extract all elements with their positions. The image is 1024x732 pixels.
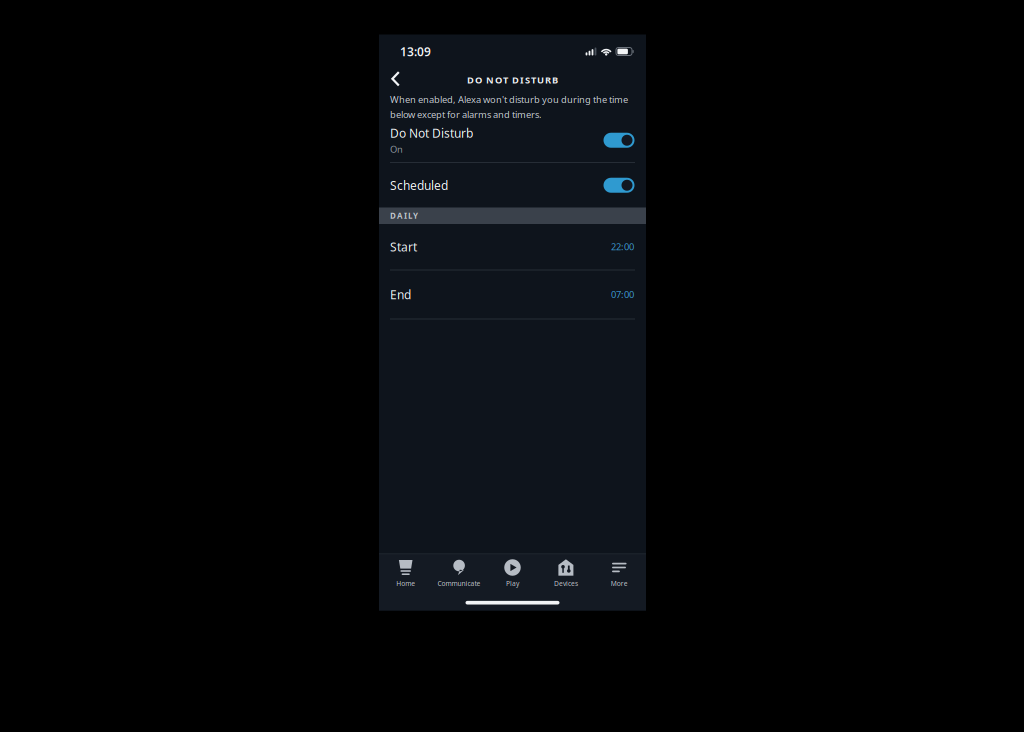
button[interactable]: Back xyxy=(379,71,401,87)
button[interactable]: Home xyxy=(379,559,432,588)
staticText: When enabled, Alexa won't disturb you du… xyxy=(390,93,628,106)
button[interactable]: Communicate xyxy=(432,559,486,588)
staticText: Start xyxy=(390,239,417,255)
button[interactable]: Do Not Disturb xyxy=(379,118,646,162)
button[interactable]: Devices xyxy=(539,559,593,588)
button[interactable]: Play xyxy=(486,559,539,588)
staticText: Play xyxy=(506,579,519,588)
staticText: Devices xyxy=(554,579,578,588)
staticText: 22:00 xyxy=(611,241,634,253)
staticText: More xyxy=(611,579,628,588)
staticText: 13:09 xyxy=(400,43,431,59)
staticText: End xyxy=(390,286,411,302)
staticText: 07:00 xyxy=(611,288,634,301)
staticText: Home xyxy=(396,579,415,588)
staticText: Scheduled xyxy=(390,177,448,193)
staticText: D A I L Y xyxy=(390,210,418,221)
staticText: Do Not Disturb xyxy=(390,125,473,141)
button[interactable]: End xyxy=(379,270,646,318)
staticText: D O N O T D I S T U R B xyxy=(467,74,558,86)
staticText: below except for alarms and timers. xyxy=(390,108,542,121)
button[interactable]: Start xyxy=(379,224,646,269)
staticText: Communicate xyxy=(438,579,481,588)
staticText: On xyxy=(390,143,403,155)
button[interactable]: More xyxy=(593,559,646,588)
button[interactable]: Scheduled xyxy=(379,163,646,207)
